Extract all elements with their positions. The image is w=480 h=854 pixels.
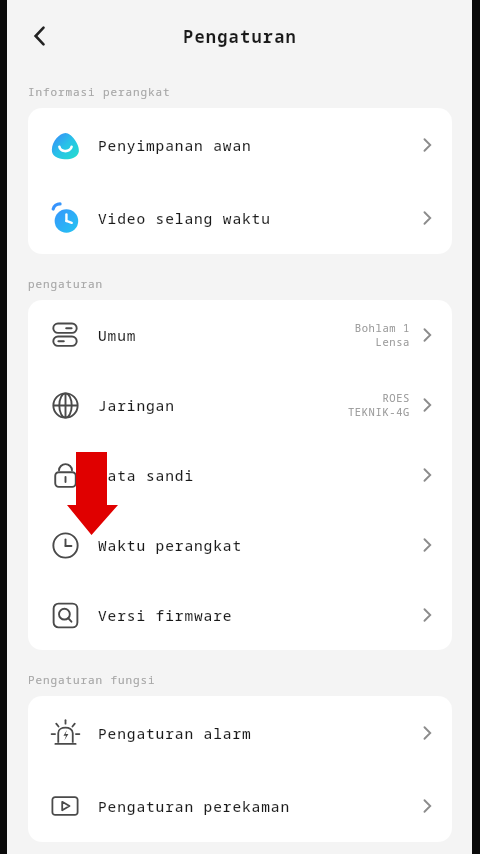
staticText: Pengaturan fungsi	[28, 672, 156, 687]
staticText: pengaturan	[28, 276, 103, 291]
button[interactable]: Waktu perangkat	[28, 510, 452, 580]
staticText: Informasi perangkat	[28, 84, 171, 99]
staticText: Jaringan	[98, 395, 175, 415]
button[interactable]: Kata sandi	[28, 440, 452, 510]
staticText: Pengaturan alarm	[98, 723, 252, 743]
staticText: Pengaturan perekaman	[98, 796, 290, 816]
button[interactable]: Back	[18, 14, 62, 58]
button[interactable]: Pengaturan alarm	[28, 696, 452, 769]
button[interactable]: Video selang waktu	[28, 181, 452, 254]
staticText: Video selang waktu	[98, 208, 271, 228]
button[interactable]: Pengaturan perekaman	[28, 769, 452, 842]
staticText: Bohlam 1 Lensa	[354, 321, 410, 349]
staticText: Kata sandi	[98, 465, 194, 485]
staticText: ROES TEKNIK-4G	[347, 391, 410, 419]
button[interactable]: Versi firmware	[28, 580, 452, 650]
staticText: Pengaturan	[183, 25, 297, 48]
button[interactable]: Umum	[28, 300, 452, 370]
staticText: Waktu perangkat	[98, 535, 242, 555]
button[interactable]: Penyimpanan awan	[28, 108, 452, 181]
staticText: Umum	[98, 325, 137, 345]
staticText: Penyimpanan awan	[98, 135, 252, 155]
button[interactable]: Jaringan	[28, 370, 452, 440]
staticText: Versi firmware	[98, 605, 233, 625]
